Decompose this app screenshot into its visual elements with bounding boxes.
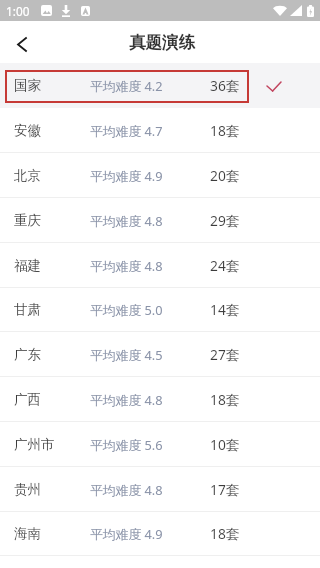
staticText: 平均难度 4.2 bbox=[90, 77, 163, 94]
staticText: 平均难度 4.8 bbox=[90, 481, 163, 498]
staticText: 广东 bbox=[14, 346, 90, 363]
staticText: 国家 bbox=[14, 77, 90, 94]
button[interactable]: 北京 bbox=[0, 153, 320, 198]
staticText: 甘肃 bbox=[14, 301, 90, 318]
staticText: 29套 bbox=[210, 211, 240, 230]
staticText: 平均难度 4.9 bbox=[90, 525, 163, 542]
staticText: 平均难度 5.0 bbox=[90, 301, 163, 318]
staticText: 27套 bbox=[210, 345, 240, 364]
staticText: 18套 bbox=[210, 390, 240, 409]
staticText: 平均难度 4.7 bbox=[90, 122, 163, 139]
staticText: 广州市 bbox=[14, 436, 90, 453]
staticText: 平均难度 4.9 bbox=[90, 167, 163, 184]
staticText: 重庆 bbox=[14, 212, 90, 229]
staticText: 10套 bbox=[210, 435, 240, 454]
staticText: 18套 bbox=[210, 121, 240, 140]
button[interactable]: 重庆 bbox=[0, 198, 320, 243]
staticText: 平均难度 5.6 bbox=[90, 436, 163, 453]
staticText: 1:00 bbox=[6, 3, 30, 19]
staticText: 平均难度 4.8 bbox=[90, 212, 163, 229]
staticText: 18套 bbox=[210, 524, 240, 543]
button[interactable]: 甘肃 bbox=[0, 288, 320, 332]
staticText: 海南 bbox=[14, 525, 90, 542]
button[interactable]: Back bbox=[0, 21, 42, 63]
staticText: 安徽 bbox=[14, 122, 90, 139]
staticText: 20套 bbox=[210, 166, 240, 185]
button[interactable]: 贵州 bbox=[0, 467, 320, 512]
staticText: 北京 bbox=[14, 167, 90, 184]
button[interactable]: 安徽 bbox=[0, 108, 320, 153]
button[interactable]: 福建 bbox=[0, 243, 320, 288]
button[interactable]: 国家 bbox=[0, 63, 320, 108]
staticText: 17套 bbox=[210, 480, 240, 499]
staticText: 24套 bbox=[210, 256, 240, 275]
other: Selected bbox=[267, 82, 281, 91]
button[interactable]: 广西 bbox=[0, 377, 320, 422]
staticText: 真题演练 bbox=[129, 32, 195, 53]
staticText: 平均难度 4.5 bbox=[90, 346, 163, 363]
staticText: 福建 bbox=[14, 257, 90, 274]
button[interactable]: 广州市 bbox=[0, 422, 320, 467]
staticText: 贵州 bbox=[14, 481, 90, 498]
button[interactable]: 海南 bbox=[0, 512, 320, 556]
staticText: 广西 bbox=[14, 391, 90, 408]
button[interactable]: 广东 bbox=[0, 332, 320, 377]
staticText: 14套 bbox=[210, 300, 240, 319]
staticText: 平均难度 4.8 bbox=[90, 257, 163, 274]
staticText: 36套 bbox=[210, 76, 240, 95]
staticText: 平均难度 4.8 bbox=[90, 391, 163, 408]
